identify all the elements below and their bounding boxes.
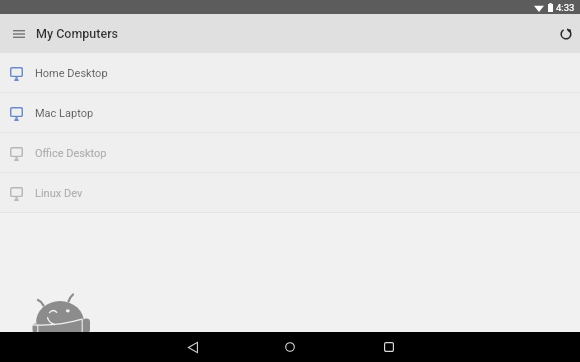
button[interactable]: Linux Dev: [0, 173, 580, 212]
staticText: 4:33: [556, 2, 575, 13]
button[interactable]: Mac Laptop: [0, 93, 580, 132]
staticText: Office Desktop: [35, 147, 107, 160]
button[interactable]: Office Desktop: [0, 133, 580, 172]
button[interactable]: Home Desktop: [0, 53, 580, 92]
staticText: Mac Laptop: [35, 107, 94, 120]
button[interactable]: Recent apps: [367, 332, 410, 362]
button[interactable]: Refresh: [552, 14, 580, 53]
staticText: Linux Dev: [35, 187, 83, 200]
staticText: Home Desktop: [35, 67, 108, 80]
button[interactable]: Home: [268, 332, 311, 362]
button[interactable]: Back: [171, 332, 214, 362]
staticText: My Computers: [36, 26, 118, 41]
button[interactable]: Open navigation menu: [2, 14, 36, 53]
